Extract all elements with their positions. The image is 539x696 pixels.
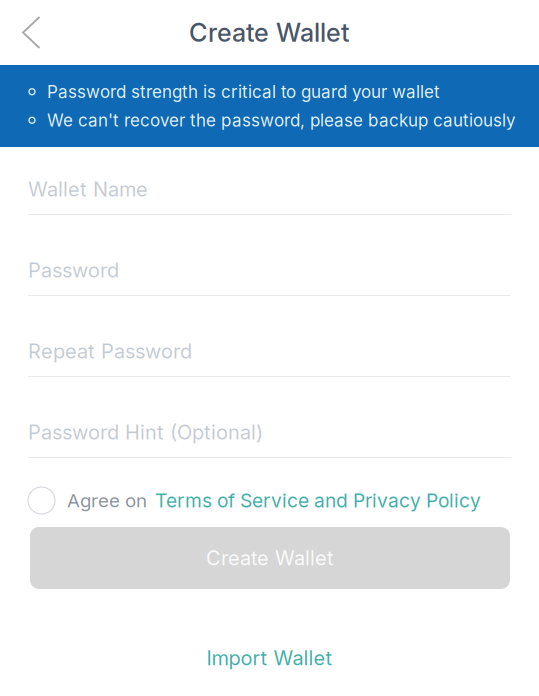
staticText: We can't recover the password, please ba… — [47, 110, 516, 131]
staticText: Wallet Name — [28, 177, 148, 201]
staticText: Repeat Password — [28, 339, 192, 363]
staticText: Password Hint (Optional) — [28, 420, 263, 444]
staticText: Create Wallet — [189, 17, 350, 48]
button[interactable]: Create Wallet — [30, 527, 510, 589]
button[interactable]: Agree to terms — [28, 487, 55, 514]
staticText: Password strength is critical to guard y… — [47, 81, 440, 102]
staticText: Import Wallet — [206, 646, 332, 670]
button[interactable]: Back — [0, 4, 62, 60]
staticText: Agree on — [67, 489, 147, 512]
staticText: Terms of Service and Privacy Policy — [155, 489, 481, 512]
button[interactable]: Terms of Service and Privacy Policy — [147, 489, 481, 512]
button[interactable]: Import Wallet — [0, 635, 539, 681]
staticText: Password — [28, 258, 119, 282]
staticText: Create Wallet — [206, 546, 334, 570]
